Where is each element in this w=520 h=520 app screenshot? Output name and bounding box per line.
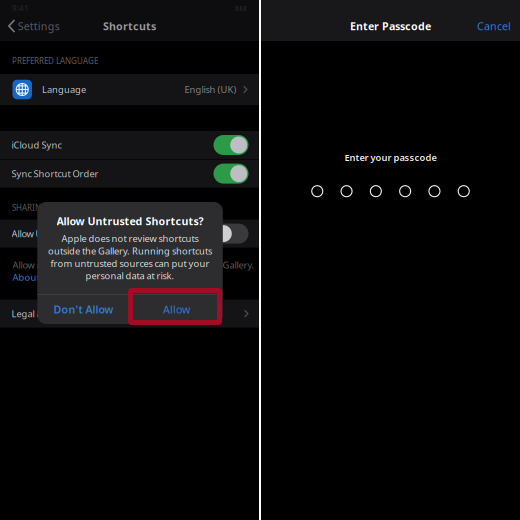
staticText: Allow Untrusted Shortcuts? (56, 214, 203, 228)
staticText: Enter Passcode (350, 19, 431, 33)
staticText: Shortcuts (103, 19, 156, 33)
button[interactable]: Settings (0, 15, 66, 37)
staticText: Allow (163, 302, 190, 316)
button[interactable]: Don't Allow (37, 295, 130, 324)
staticText: Allow running shortcuts downloaded outsi… (12, 259, 254, 271)
staticText: Sync Shortcut Order (11, 167, 98, 180)
staticText: outside the Gallery. Running shortcuts (48, 245, 212, 257)
staticText: iCloud Sync (11, 139, 61, 151)
button[interactable]: Language (0, 74, 259, 105)
staticText: Don't Allow (53, 302, 113, 316)
staticText: PREFERRED LANGUAGE (12, 56, 98, 66)
staticText: ▮▮▮ (235, 4, 247, 12)
staticText: English (UK) (184, 83, 236, 96)
button[interactable]: Allow (130, 295, 223, 324)
staticText: Language (42, 83, 86, 96)
staticText: Allow Untrusted Shortcuts (11, 227, 122, 240)
button[interactable]: Cancel (468, 14, 520, 38)
staticText: Enter your passcode (344, 151, 436, 164)
button[interactable]: Sync Shortcut Order (0, 160, 259, 188)
staticText: Apple does not review shortcuts (61, 232, 198, 245)
button[interactable]: Allow Untrusted Shortcuts (0, 220, 259, 248)
staticText: 9:41 (12, 3, 29, 13)
staticText: personal data at risk. (85, 269, 174, 282)
button[interactable]: iCloud Sync (0, 131, 259, 159)
staticText: Legal & Privacy (11, 307, 76, 320)
staticText: from untrusted sources can put your (50, 257, 209, 269)
staticText: Settings (18, 19, 60, 33)
staticText: SHARING (12, 202, 47, 213)
button[interactable]: Legal & Privacy (0, 300, 259, 328)
button[interactable]: About Untrusted Shortcuts… (12, 271, 135, 283)
staticText: Cancel (477, 19, 511, 33)
staticText: About Untrusted Shortcuts… (12, 271, 135, 283)
